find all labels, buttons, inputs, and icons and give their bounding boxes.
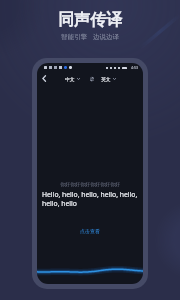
staticText: 4:53 bbox=[131, 65, 139, 70]
staticText: 边说边译 bbox=[93, 33, 119, 41]
staticText: Hello, hello, hello, hello, hello, hello… bbox=[42, 190, 138, 208]
staticText: 你好你好你好你好你好你好 bbox=[42, 181, 138, 187]
button[interactable]: Back bbox=[38, 73, 49, 84]
button[interactable]: 点击查看 bbox=[42, 228, 138, 234]
button[interactable]: Swap languages bbox=[88, 75, 96, 83]
staticText: 同声传译 bbox=[58, 10, 122, 30]
staticText: 智能引擎 bbox=[61, 33, 87, 41]
staticText: 中文 bbox=[65, 76, 75, 82]
staticText: 英文 bbox=[101, 76, 111, 82]
button[interactable]: 中文 bbox=[64, 75, 81, 83]
button[interactable]: 英文 bbox=[100, 75, 117, 83]
